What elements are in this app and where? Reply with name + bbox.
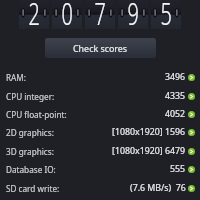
staticText: 4335 (165, 90, 186, 102)
other: Details (188, 93, 195, 100)
button[interactable]: SD card write: (0, 179, 200, 197)
staticText: SD card write: (6, 183, 60, 194)
button[interactable]: Check scores (45, 38, 156, 58)
button[interactable]: RAM: (0, 68, 200, 86)
other: Details (188, 148, 195, 155)
staticText: 5 (161, 0, 172, 35)
other: Details (188, 166, 195, 173)
staticText: 2 (29, 0, 40, 35)
staticText: (7.6 MB/s) 76 (130, 182, 186, 194)
button[interactable]: Database IO: (0, 160, 200, 178)
staticText: CPU integer: (6, 91, 55, 102)
other: Details (188, 185, 195, 192)
staticText: 3496 (165, 71, 186, 83)
staticText: CPU float-point: (6, 109, 67, 120)
other: Details (188, 111, 195, 118)
button[interactable]: 3D graphics: (0, 142, 200, 160)
staticText: 4052 (165, 108, 186, 120)
other: Details (188, 74, 195, 81)
other: Details (188, 129, 195, 136)
staticText: 7 (95, 0, 106, 35)
staticText: 2D graphics: (6, 127, 54, 138)
staticText: [1080x1920] 1596 (112, 126, 186, 138)
staticText: 555 (170, 163, 186, 175)
staticText: 0 (62, 0, 73, 35)
staticText: [1080x1920] 6479 (112, 145, 186, 157)
staticText: Database IO: (6, 164, 56, 175)
staticText: RAM: (6, 72, 26, 83)
button[interactable]: 2D graphics: (0, 123, 200, 141)
staticText: 3D graphics: (6, 146, 54, 157)
staticText: 9 (128, 0, 139, 35)
button[interactable]: CPU float-point: (0, 105, 200, 123)
staticText: Check scores (73, 42, 128, 54)
button[interactable]: CPU integer: (0, 87, 200, 105)
